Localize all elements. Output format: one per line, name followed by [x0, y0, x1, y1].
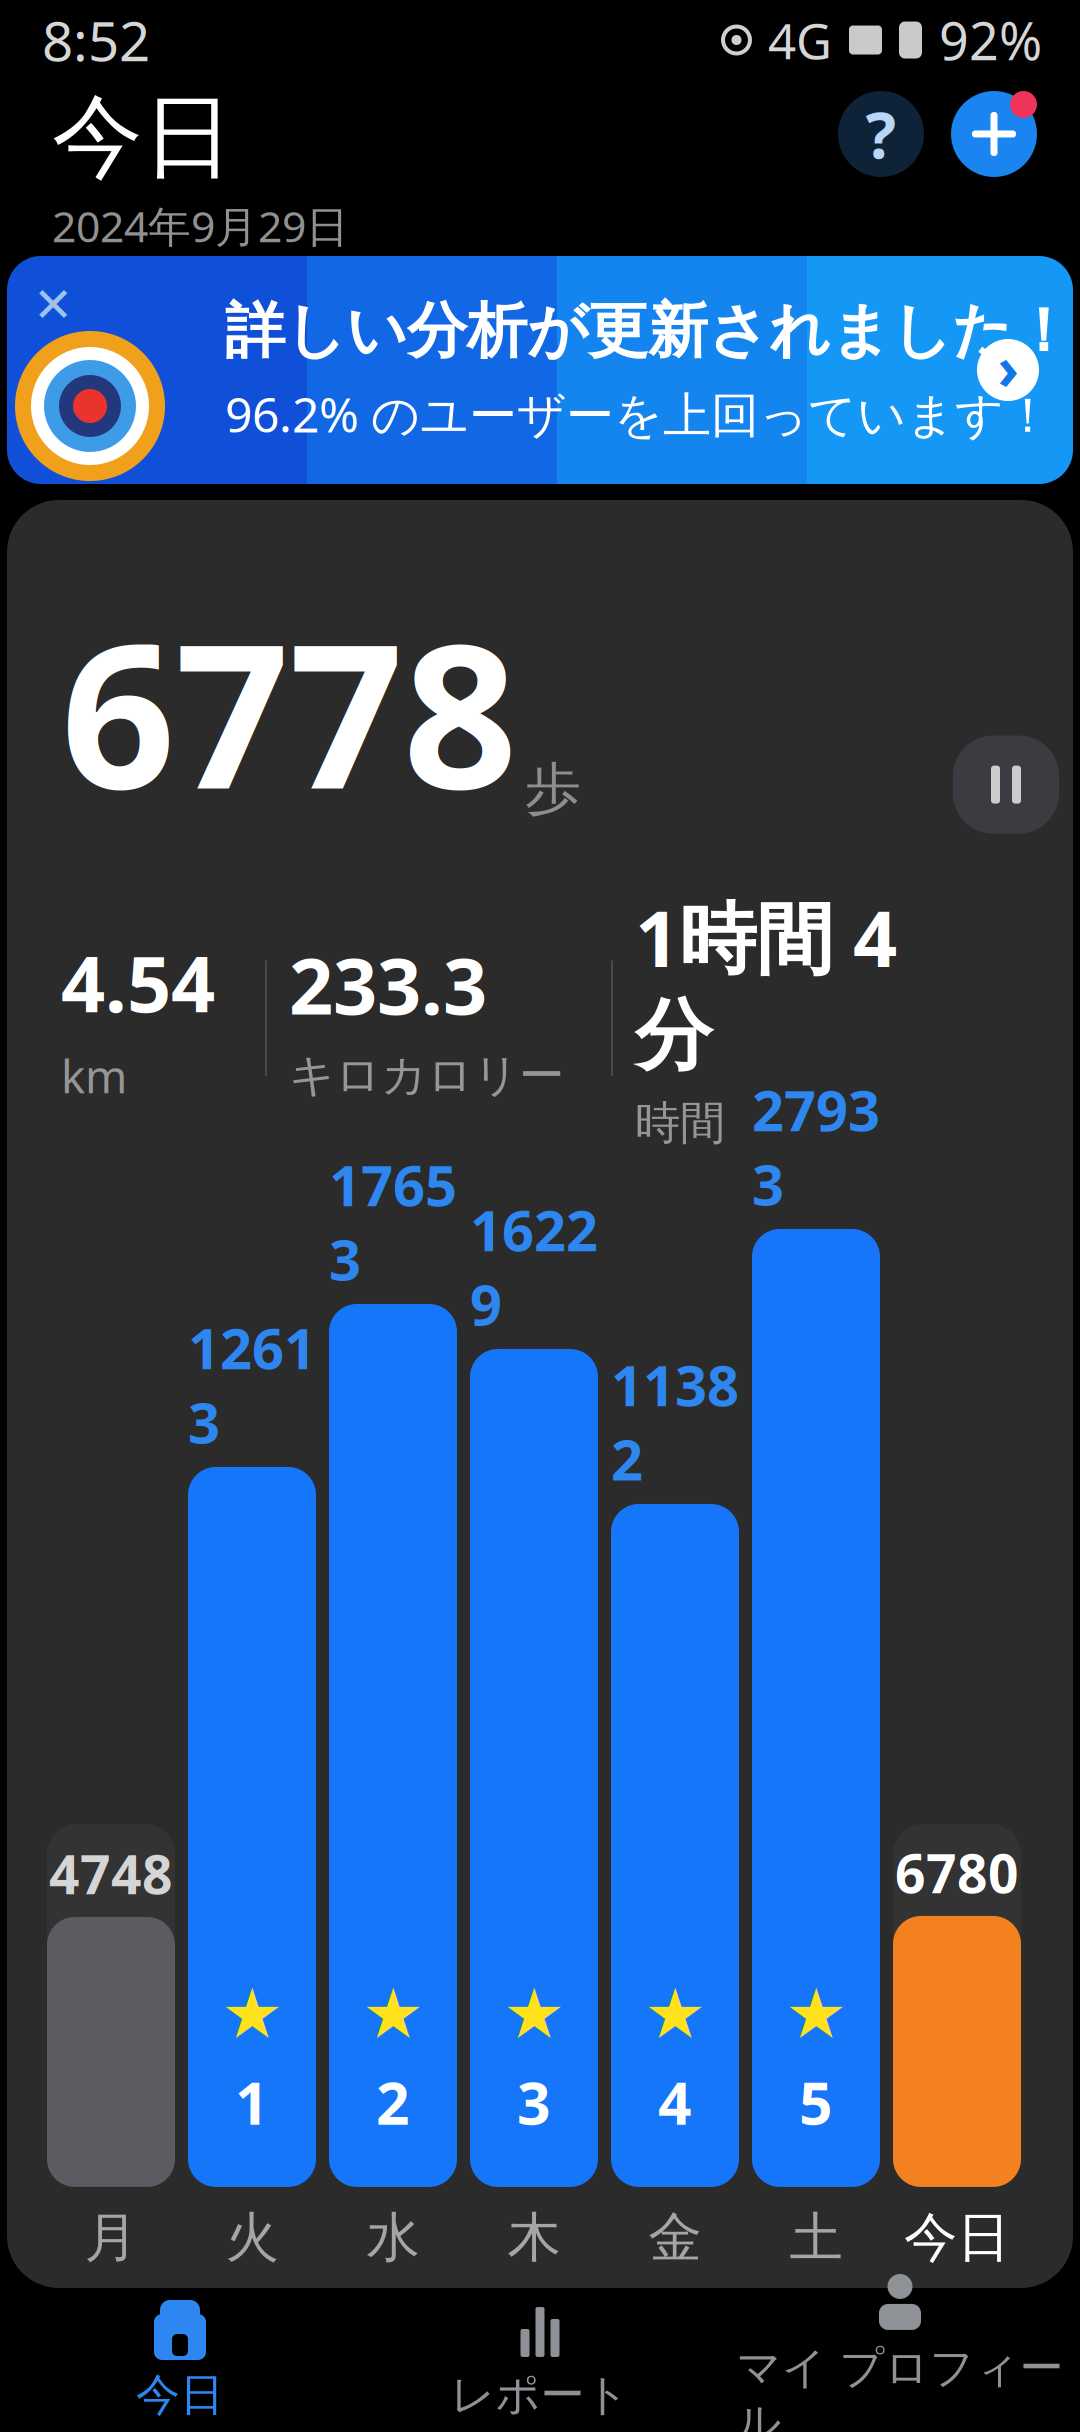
staticText: ★ — [785, 1974, 847, 2053]
button[interactable]: ヘルプ — [838, 91, 924, 177]
staticText: レポート — [450, 2368, 629, 2422]
staticText: ★ — [221, 1974, 283, 2053]
button[interactable]: 閉じる — [21, 273, 85, 337]
staticText: 5 — [799, 2063, 833, 2141]
staticText: ★ — [503, 1974, 565, 2053]
staticText: 一日の平均: 13905 — [326, 2296, 754, 2364]
staticText: 96.2% のユーザーを上回っています！ — [225, 382, 1052, 446]
staticText: ★ — [644, 1974, 706, 2053]
staticText: km — [61, 1045, 127, 1106]
staticText: 月 — [84, 2205, 137, 2270]
staticText: 2 — [376, 2063, 410, 2141]
staticText: ? — [865, 91, 896, 176]
staticText: 16229 — [470, 1192, 598, 1341]
staticText: 木 — [507, 2205, 560, 2270]
staticText: ★ — [362, 1974, 424, 2053]
staticText: 233.3 — [289, 933, 487, 1036]
staticText: 詳しい分析が更新されました！ — [225, 294, 1073, 368]
staticText: 4G — [768, 7, 832, 73]
staticText: 今日 — [904, 2205, 1010, 2270]
button[interactable]: 追加 — [948, 88, 1040, 180]
staticText: 11382 — [611, 1347, 739, 1496]
staticText: 4.54 — [61, 931, 215, 1033]
staticText: 4748 — [49, 1838, 173, 1909]
staticText: 8:52 — [42, 4, 150, 76]
button[interactable]: 一時停止 — [953, 736, 1059, 834]
staticText: › — [997, 328, 1018, 406]
staticText: 6780 — [895, 1837, 1019, 1908]
button[interactable]: 今日 — [0, 2290, 360, 2432]
staticText: 歩 — [525, 755, 581, 824]
staticText: 時間 — [635, 1095, 725, 1151]
staticText: 92% — [939, 5, 1042, 75]
button[interactable]: レポート — [360, 2290, 720, 2432]
staticText: 3 — [517, 2063, 551, 2141]
staticText: 6778 — [61, 578, 517, 844]
staticText: 火 — [225, 2205, 278, 2270]
staticText: 12613 — [188, 1310, 316, 1459]
staticText: 1 — [235, 2063, 269, 2141]
staticText: 27933 — [752, 1072, 880, 1221]
button[interactable]: 詳しい分析が更新されました — [7, 256, 1073, 484]
button[interactable]: マイ プロフィール — [720, 2290, 1080, 2432]
staticText: キロカロリー — [289, 1048, 564, 1103]
staticText: 2024年9月29日 — [52, 197, 349, 254]
staticText: 1時間 4分 — [635, 886, 897, 1083]
staticText: ✕ — [33, 278, 73, 332]
staticText: 土 — [789, 2205, 842, 2270]
staticText: 今日 — [136, 2368, 224, 2422]
staticText: 4 — [658, 2063, 692, 2141]
staticText: 金 — [648, 2205, 701, 2270]
staticText: マイ プロフィール — [736, 2341, 1063, 2432]
staticText: 今日 — [52, 82, 234, 193]
staticText: 水 — [366, 2205, 419, 2270]
staticText: 17653 — [329, 1147, 457, 1296]
